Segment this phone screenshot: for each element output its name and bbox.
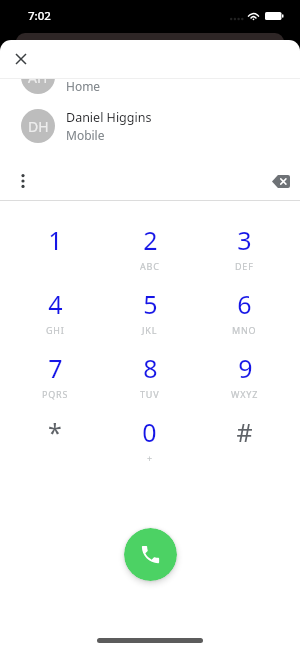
staticText: 7 (48, 351, 63, 385)
button[interactable]: 3 (197, 223, 292, 287)
staticText: # (236, 415, 253, 449)
button[interactable]: 4 (8, 287, 102, 351)
staticText: DH (28, 117, 49, 136)
staticText: 2 (143, 223, 158, 257)
staticText: 1 (48, 223, 63, 257)
button[interactable]: More options (13, 171, 33, 191)
button[interactable]: AH (0, 79, 300, 101)
staticText: MNO (232, 324, 257, 336)
button[interactable]: 8 (102, 351, 197, 415)
staticText: 5 (143, 287, 158, 321)
button[interactable]: Call (124, 528, 177, 581)
staticText: 7:02 (28, 8, 51, 24)
staticText: Daniel Higgins (66, 109, 152, 126)
button[interactable]: 5 (102, 287, 197, 351)
staticText: 4 (48, 287, 63, 321)
button[interactable]: Close (9, 47, 33, 71)
button[interactable]: * (8, 415, 102, 479)
staticText: 0 (142, 415, 157, 449)
staticText: WXYZ (231, 388, 259, 400)
button[interactable]: Backspace (268, 168, 294, 194)
staticText: JKL (142, 324, 158, 336)
staticText: DEF (235, 260, 254, 272)
staticText: 9 (238, 351, 253, 385)
staticText: Home (66, 79, 101, 94)
button[interactable]: DH (0, 101, 300, 150)
button[interactable]: 9 (197, 351, 292, 415)
staticText: TUV (140, 388, 160, 400)
staticText: 8 (143, 351, 158, 385)
staticText: + (147, 452, 153, 464)
staticText: AH (28, 79, 48, 87)
button[interactable]: 7 (8, 351, 102, 415)
staticText: PQRS (42, 388, 69, 400)
staticText: ABC (140, 260, 160, 272)
staticText: 6 (237, 287, 252, 321)
staticText: GHI (46, 324, 65, 336)
button[interactable]: # (197, 415, 292, 479)
staticText: * (48, 415, 62, 449)
button[interactable]: 2 (102, 223, 197, 287)
button[interactable]: 1 (8, 223, 102, 287)
staticText: Mobile (66, 127, 105, 143)
button[interactable]: 0 (102, 415, 197, 479)
button[interactable]: 6 (197, 287, 292, 351)
staticText: 3 (237, 223, 252, 257)
